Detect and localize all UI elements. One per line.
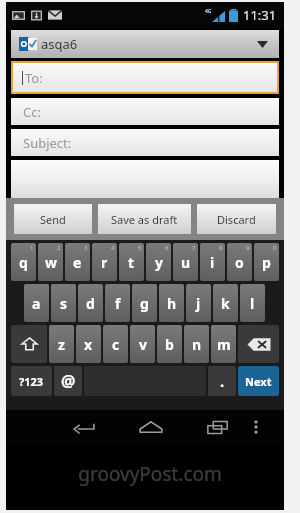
staticText: c bbox=[112, 335, 120, 354]
button[interactable]: s bbox=[51, 284, 76, 322]
staticText: asqa6 bbox=[41, 35, 78, 53]
button[interactable] bbox=[11, 160, 279, 198]
button[interactable]: j bbox=[186, 284, 211, 322]
staticText: i bbox=[210, 253, 215, 272]
staticText: Cc: bbox=[23, 103, 41, 121]
button[interactable]: y bbox=[146, 243, 171, 281]
button[interactable]: asqa6 bbox=[11, 30, 279, 58]
staticText: g bbox=[140, 294, 149, 313]
button[interactable]: Shift bbox=[11, 325, 47, 363]
button[interactable]: b bbox=[157, 325, 182, 363]
staticText: k bbox=[221, 294, 230, 313]
staticText: ?123 bbox=[19, 374, 44, 389]
staticText: Send bbox=[40, 212, 66, 227]
staticText: w bbox=[45, 253, 57, 272]
staticText: h bbox=[167, 294, 177, 313]
staticText: j bbox=[196, 294, 201, 313]
staticText: x bbox=[84, 335, 93, 354]
button[interactable]: r bbox=[92, 243, 117, 281]
button[interactable]: z bbox=[49, 325, 74, 363]
staticText: n bbox=[192, 335, 202, 354]
button[interactable]: At sign bbox=[54, 366, 82, 396]
button[interactable]: Home bbox=[128, 410, 173, 444]
staticText: 7 bbox=[192, 244, 196, 252]
button[interactable]: w bbox=[38, 243, 63, 281]
button[interactable]: d bbox=[78, 284, 103, 322]
button[interactable]: More options bbox=[240, 410, 271, 444]
button[interactable]: Send bbox=[14, 204, 92, 234]
button[interactable]: e bbox=[65, 243, 90, 281]
staticText: Save as draft bbox=[111, 212, 178, 227]
staticText: 9 bbox=[246, 244, 250, 252]
button[interactable]: Back bbox=[61, 410, 106, 444]
staticText: e bbox=[73, 253, 82, 272]
staticText: d bbox=[86, 294, 95, 313]
staticText: @ bbox=[61, 370, 76, 392]
button[interactable]: o bbox=[227, 243, 252, 281]
button[interactable]: i bbox=[200, 243, 225, 281]
button[interactable]: m bbox=[211, 325, 236, 363]
button[interactable]: Cc: bbox=[11, 98, 279, 125]
button[interactable]: c bbox=[103, 325, 128, 363]
staticText: q bbox=[19, 253, 28, 272]
button[interactable]: Symbols bbox=[11, 366, 52, 396]
button[interactable]: p bbox=[254, 243, 279, 281]
staticText: groovyPost.com bbox=[0, 461, 300, 487]
button[interactable]: x bbox=[76, 325, 101, 363]
staticText: Subject: bbox=[23, 134, 72, 152]
button[interactable]: Subject: bbox=[11, 129, 279, 156]
staticText: u bbox=[181, 253, 191, 272]
staticText: 0 bbox=[273, 244, 277, 252]
staticText: t bbox=[128, 253, 135, 272]
staticText: 3 bbox=[84, 244, 88, 252]
staticText: f bbox=[115, 294, 121, 313]
staticText: 11:31 bbox=[243, 6, 277, 24]
staticText: 4 bbox=[111, 244, 115, 252]
staticText: 4G bbox=[205, 8, 212, 15]
button[interactable]: l bbox=[240, 284, 265, 322]
staticText: y bbox=[155, 253, 163, 272]
staticText: Next bbox=[245, 374, 272, 389]
button[interactable]: Save as draft bbox=[98, 204, 191, 234]
staticText: v bbox=[139, 335, 147, 354]
button[interactable]: a bbox=[24, 284, 49, 322]
staticText: . bbox=[220, 371, 225, 391]
staticText: p bbox=[262, 253, 271, 272]
staticText: l bbox=[250, 294, 255, 313]
staticText: m bbox=[217, 335, 231, 354]
staticText: b bbox=[165, 335, 174, 354]
button[interactable]: Next bbox=[238, 366, 279, 396]
staticText: z bbox=[58, 335, 65, 354]
button[interactable]: v bbox=[130, 325, 155, 363]
button[interactable]: f bbox=[105, 284, 130, 322]
staticText: 2 bbox=[57, 244, 61, 252]
button[interactable]: Recent apps bbox=[195, 410, 240, 444]
button[interactable]: n bbox=[184, 325, 209, 363]
button[interactable]: q bbox=[11, 243, 36, 281]
button[interactable]: u bbox=[173, 243, 198, 281]
button[interactable]: t bbox=[119, 243, 144, 281]
button[interactable]: Discard bbox=[197, 204, 276, 234]
button[interactable]: Period bbox=[208, 366, 236, 396]
staticText: s bbox=[60, 294, 68, 313]
staticText: r bbox=[101, 253, 108, 272]
staticText: 6 bbox=[165, 244, 169, 252]
button[interactable]: h bbox=[159, 284, 184, 322]
staticText: o bbox=[235, 253, 244, 272]
button[interactable]: g bbox=[132, 284, 157, 322]
button[interactable]: To: bbox=[13, 63, 277, 92]
button[interactable]: Delete bbox=[238, 325, 279, 363]
staticText: 1 bbox=[30, 244, 34, 252]
staticText: 5 bbox=[138, 244, 142, 252]
button[interactable]: k bbox=[213, 284, 238, 322]
staticText: Discard bbox=[217, 212, 256, 227]
staticText: 8 bbox=[219, 244, 223, 252]
staticText: To: bbox=[25, 69, 43, 87]
staticText: a bbox=[32, 294, 41, 313]
